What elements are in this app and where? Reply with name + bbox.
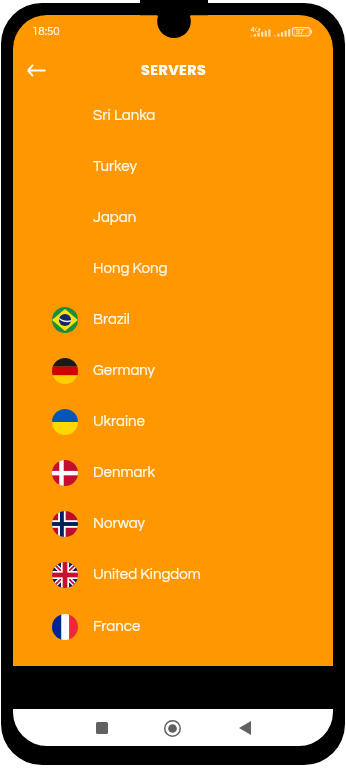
staticText: United Kingdom: [93, 567, 201, 582]
staticText: Norway: [93, 516, 146, 531]
staticText: Denmark: [93, 465, 156, 480]
button[interactable]: Back: [233, 716, 257, 740]
button[interactable]: Sri Lanka: [13, 90, 333, 141]
staticText: Brazil: [93, 312, 130, 327]
button[interactable]: Home: [160, 716, 184, 740]
button[interactable]: France: [13, 601, 333, 652]
staticText: Hong Kong: [93, 261, 168, 276]
staticText: SERVERS: [141, 60, 207, 80]
staticText: Ukraine: [93, 414, 145, 429]
staticText: Germany: [93, 363, 156, 378]
staticText: 18:50: [32, 26, 60, 38]
button[interactable]: Denmark: [13, 447, 333, 498]
button[interactable]: Brazil: [13, 294, 333, 345]
staticText: 97: [296, 28, 304, 35]
button[interactable]: Recents: [90, 716, 114, 740]
button[interactable]: Norway: [13, 498, 333, 549]
button[interactable]: Hong Kong: [13, 243, 333, 294]
button[interactable]: United Kingdom: [13, 549, 333, 600]
button[interactable]: Japan: [13, 192, 333, 243]
button[interactable]: Germany: [13, 345, 333, 396]
button[interactable]: Back: [22, 56, 51, 85]
staticText: Japan: [93, 210, 137, 225]
button[interactable]: Ukraine: [13, 396, 333, 447]
staticText: Turkey: [93, 159, 138, 174]
staticText: Sri Lanka: [93, 108, 156, 123]
button[interactable]: Turkey: [13, 141, 333, 192]
staticText: France: [93, 619, 141, 634]
